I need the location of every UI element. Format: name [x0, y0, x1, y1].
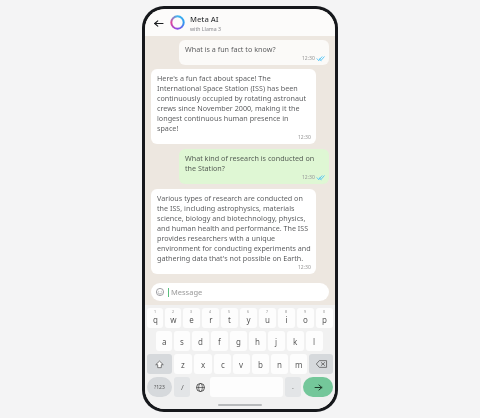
button[interactable]: a — [156, 331, 172, 351]
button[interactable]: . — [285, 377, 301, 397]
staticText: Meta AI — [190, 14, 219, 24]
staticText: r — [209, 314, 213, 325]
staticText: 4 — [209, 309, 212, 314]
other: Emoji — [156, 288, 164, 296]
staticText: 12:30 — [298, 264, 311, 271]
button[interactable]: v — [233, 354, 250, 374]
staticText: 0 — [323, 309, 326, 314]
button[interactable]: d — [192, 331, 209, 351]
staticText: q — [153, 314, 158, 325]
button[interactable]: 9 — [297, 308, 314, 328]
button[interactable]: ?123 — [147, 377, 172, 397]
button[interactable]: 3 — [183, 308, 200, 328]
staticText: 2 — [172, 309, 175, 314]
staticText: l — [313, 336, 316, 347]
button[interactable]: b — [252, 354, 269, 374]
button[interactable]: / — [174, 377, 190, 397]
button[interactable]: 8 — [278, 308, 295, 328]
staticText: t — [228, 314, 231, 325]
button[interactable]: g — [230, 331, 247, 351]
button[interactable]: Meta AI — [190, 14, 327, 32]
button[interactable]: 1 — [147, 308, 163, 328]
staticText: k — [293, 336, 298, 347]
staticText: d — [198, 336, 203, 347]
button[interactable]: c — [214, 354, 231, 374]
staticText: j — [275, 336, 278, 347]
button[interactable]: Backspace — [309, 354, 333, 374]
staticText: m — [295, 359, 303, 370]
button[interactable]: Change language — [192, 377, 208, 397]
staticText: y — [246, 314, 251, 325]
button[interactable]: x — [194, 354, 212, 374]
staticText: / — [181, 382, 184, 392]
staticText: 9 — [304, 309, 307, 314]
button[interactable]: Various types of research are conducted … — [151, 189, 316, 274]
button[interactable]: j — [268, 331, 285, 351]
button[interactable]: k — [287, 331, 304, 351]
staticText: 5 — [228, 309, 231, 314]
staticText: x — [201, 359, 206, 370]
button[interactable]: h — [249, 331, 266, 351]
staticText: with Llama 3 — [190, 25, 221, 32]
staticText: p — [322, 314, 327, 325]
staticText: Various types of research are conducted … — [157, 193, 311, 263]
button[interactable]: l — [306, 331, 323, 351]
staticText: 3 — [190, 309, 193, 314]
button[interactable]: Shift — [147, 354, 172, 374]
button[interactable]: Emoji — [151, 283, 329, 301]
button[interactable]: m — [290, 354, 307, 374]
button[interactable]: Here's a fun fact about space! The Inter… — [151, 69, 316, 144]
staticText: 12:30 — [302, 55, 315, 62]
staticText: 7 — [266, 309, 269, 314]
button[interactable]: Back — [150, 15, 166, 31]
button[interactable]: s — [174, 331, 190, 351]
staticText: What is a fun fact to know? — [185, 44, 276, 54]
button[interactable]: 6 — [240, 308, 257, 328]
button[interactable]: 7 — [259, 308, 276, 328]
button[interactable]: 5 — [221, 308, 238, 328]
staticText: 6 — [247, 309, 250, 314]
staticText: s — [180, 336, 184, 347]
staticText: f — [218, 336, 221, 347]
staticText: 8 — [285, 309, 288, 314]
staticText: ?123 — [154, 384, 165, 391]
button[interactable]: 2 — [165, 308, 181, 328]
button[interactable]: Meta AI avatar — [170, 15, 185, 30]
staticText: What kind of research is conducted on th… — [185, 153, 324, 173]
staticText: i — [285, 314, 288, 325]
button[interactable]: What is a fun fact to know? — [179, 40, 329, 65]
staticText: o — [303, 314, 308, 325]
staticText: Here's a fun fact about space! The Inter… — [157, 73, 311, 133]
button[interactable]: 4 — [202, 308, 219, 328]
staticText: 12:30 — [298, 134, 311, 141]
button[interactable]: Send — [303, 377, 333, 397]
staticText: a — [162, 336, 167, 347]
staticText: n — [277, 359, 282, 370]
staticText: u — [265, 314, 270, 325]
button[interactable]: z — [174, 354, 192, 374]
button[interactable]: n — [271, 354, 288, 374]
staticText: g — [236, 336, 241, 347]
staticText: h — [255, 336, 260, 347]
button[interactable]: What kind of research is conducted on th… — [179, 149, 329, 184]
staticText: Message — [171, 287, 203, 297]
staticText: c — [221, 359, 225, 370]
staticText: 1 — [154, 309, 157, 314]
button[interactable]: f — [211, 331, 228, 351]
staticText: e — [189, 314, 194, 325]
staticText: 12:30 — [302, 174, 315, 181]
staticText: z — [181, 359, 185, 370]
staticText: b — [258, 359, 263, 370]
button[interactable]: 0 — [316, 308, 333, 328]
staticText: v — [239, 359, 244, 370]
staticText: . — [292, 382, 294, 392]
staticText: w — [170, 314, 177, 325]
